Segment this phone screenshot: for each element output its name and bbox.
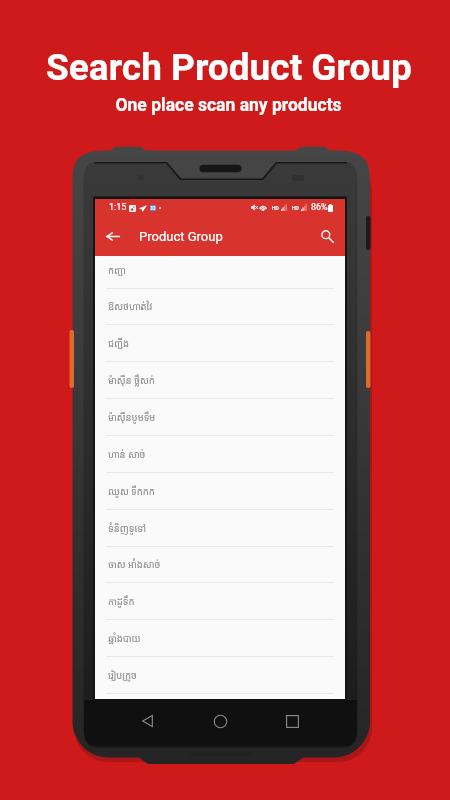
staticText: Product Group xyxy=(139,229,223,244)
staticText: ជញ្ជីង xyxy=(108,337,130,350)
staticText: ចាស អាំងសាច់ xyxy=(108,558,161,571)
button[interactable]: Back xyxy=(98,216,128,256)
button[interactable]: ទំនិញទូទៅ xyxy=(95,510,345,547)
staticText: 1:15 xyxy=(109,202,127,213)
button[interactable]: Recent apps xyxy=(276,699,308,743)
staticText: ម៉ាស៊ីន ថ្លឹសក់ xyxy=(108,374,155,387)
staticText: One place scan any products xyxy=(115,95,342,116)
staticText: ទំនិញទូទៅ xyxy=(108,522,146,535)
staticText: ហាន់ សាច់ xyxy=(108,448,146,461)
button[interactable]: ឆ្នាំងបាយ xyxy=(95,620,345,657)
button[interactable]: រៀបក្រូច xyxy=(95,657,345,694)
staticText: HD xyxy=(272,205,279,211)
button[interactable]: កាដូទឹក xyxy=(95,583,345,620)
staticText: Search Product Group xyxy=(46,46,412,89)
button[interactable]: Search xyxy=(310,216,345,256)
staticText: HD xyxy=(292,205,299,211)
button[interactable]: ម៉ាស៊ីន ថ្លឹសក់ xyxy=(95,362,345,399)
staticText: រៀបក្រូច xyxy=(108,669,137,682)
button[interactable]: Back xyxy=(131,699,163,743)
button[interactable]: ចាស អាំងសាច់ xyxy=(95,546,345,583)
staticText: ឱសថហាត់វៃ xyxy=(108,300,153,313)
staticText: ឈូស ទឹកកក xyxy=(108,485,155,498)
staticText: ម៉ាស៊ីនបូមទឹម xyxy=(108,411,156,424)
button[interactable]: ម៉ាស៊ីនបូមទឹម xyxy=(95,399,345,436)
staticText: 86% xyxy=(311,202,328,213)
staticText: កាដូទឹក xyxy=(108,595,135,608)
button[interactable]: ហាន់ សាច់ xyxy=(95,436,345,473)
button[interactable]: ជញ្ជីង xyxy=(95,325,345,362)
staticText: កញ្ឆា xyxy=(108,264,126,277)
button[interactable]: ឱសថហាត់វៃ xyxy=(95,288,345,325)
button[interactable]: ឈូស ទឹកកក xyxy=(95,473,345,510)
button[interactable]: Home xyxy=(204,699,236,743)
button[interactable]: កញ្ឆា xyxy=(95,252,345,289)
staticText: ឆ្នាំងបាយ xyxy=(108,632,141,645)
